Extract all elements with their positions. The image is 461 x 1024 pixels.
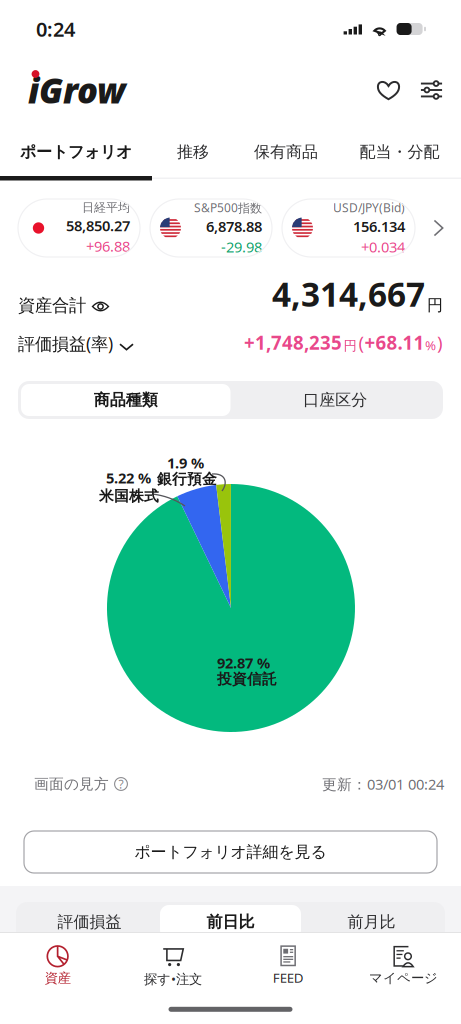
staticText: 資産 — [45, 970, 71, 986]
staticText: 0:24 — [36, 16, 75, 42]
staticText: 156.134 — [353, 216, 405, 236]
staticText: 1.9 % — [167, 453, 204, 472]
staticText: 商品種類 — [94, 390, 158, 410]
button[interactable]: 推移 — [152, 128, 234, 176]
staticText: 4,314,667 — [272, 272, 425, 316]
staticText: 口座区分 — [303, 390, 367, 410]
button[interactable]: 商品種類 — [21, 384, 230, 416]
staticText: 配当・分配 — [359, 142, 439, 162]
staticText: 円 — [427, 295, 443, 315]
staticText: 5.22 % — [106, 468, 151, 487]
button[interactable]: マイページ — [346, 933, 461, 989]
staticText: 投資信託 — [217, 670, 277, 688]
staticText: 6,878.88 — [206, 216, 262, 236]
staticText: 評価損益(率) — [18, 332, 113, 355]
button[interactable]: 資産合計を表示／非表示 — [86, 298, 109, 316]
button[interactable]: ポートフォリオ詳細を見る — [24, 831, 437, 873]
staticText: 画面の見方 — [34, 775, 109, 793]
button[interactable]: S&P500指数 — [150, 199, 272, 257]
button[interactable]: 画面の見方 — [34, 775, 128, 793]
staticText: ? — [118, 776, 123, 792]
button[interactable]: お気に入り — [370, 71, 407, 108]
staticText: 更新：03/01 00:24 — [322, 774, 444, 794]
staticText: ポートフォリオ詳細を見る — [134, 842, 326, 862]
staticText: ポートフォリオ — [20, 142, 132, 162]
staticText: ( — [358, 330, 364, 355]
button[interactable]: 前日比 — [160, 905, 301, 939]
button[interactable]: 口座区分 — [230, 384, 440, 416]
staticText: iGrow — [28, 67, 126, 113]
button[interactable]: 資産 — [0, 933, 115, 989]
staticText: FEED — [273, 969, 304, 986]
button[interactable]: 評価損益の表示切替 — [113, 340, 133, 355]
staticText: 資産合計 — [18, 295, 86, 316]
button[interactable]: 前月比 — [301, 905, 442, 939]
staticText: +1,748,235 — [244, 330, 342, 355]
staticText: 保有商品 — [254, 142, 318, 162]
staticText: S&P500指数 — [194, 199, 262, 215]
staticText: マイページ — [369, 970, 438, 986]
staticText: USD/JPY(Bid) — [333, 200, 405, 215]
button[interactable]: 探す•注文 — [115, 933, 230, 989]
button[interactable]: ポートフォリオ — [0, 128, 152, 176]
staticText: ) — [437, 330, 443, 355]
staticText: +96.88 — [86, 236, 130, 256]
staticText: 日経平均 — [82, 200, 130, 215]
button[interactable]: 配当・分配 — [338, 128, 461, 176]
staticText: +68.11 — [364, 330, 424, 355]
staticText: 円 — [343, 338, 356, 354]
staticText: 58,850.27 — [66, 216, 130, 235]
button[interactable]: マーケット一覧 — [425, 215, 451, 241]
staticText: 前日比 — [206, 912, 254, 932]
button[interactable]: 評価損益 — [19, 905, 160, 939]
staticText: 銀行預金 — [157, 470, 217, 488]
staticText: 推移 — [177, 142, 209, 162]
staticText: -29.98 — [221, 237, 262, 256]
staticText: 92.87 % — [217, 653, 270, 672]
button[interactable]: 日経平均 — [18, 199, 140, 257]
staticText: 米国株式 — [99, 487, 159, 505]
button[interactable]: 設定 — [413, 71, 450, 108]
button[interactable]: FEED — [230, 933, 346, 989]
staticText: +0.034 — [361, 237, 405, 256]
staticText: % — [425, 336, 436, 354]
button[interactable]: 保有商品 — [234, 128, 338, 176]
staticText: 前月比 — [347, 912, 395, 932]
button[interactable]: USD/JPY(Bid) — [282, 199, 415, 257]
staticText: 探す•注文 — [144, 970, 202, 987]
staticText: 評価損益 — [57, 912, 121, 932]
